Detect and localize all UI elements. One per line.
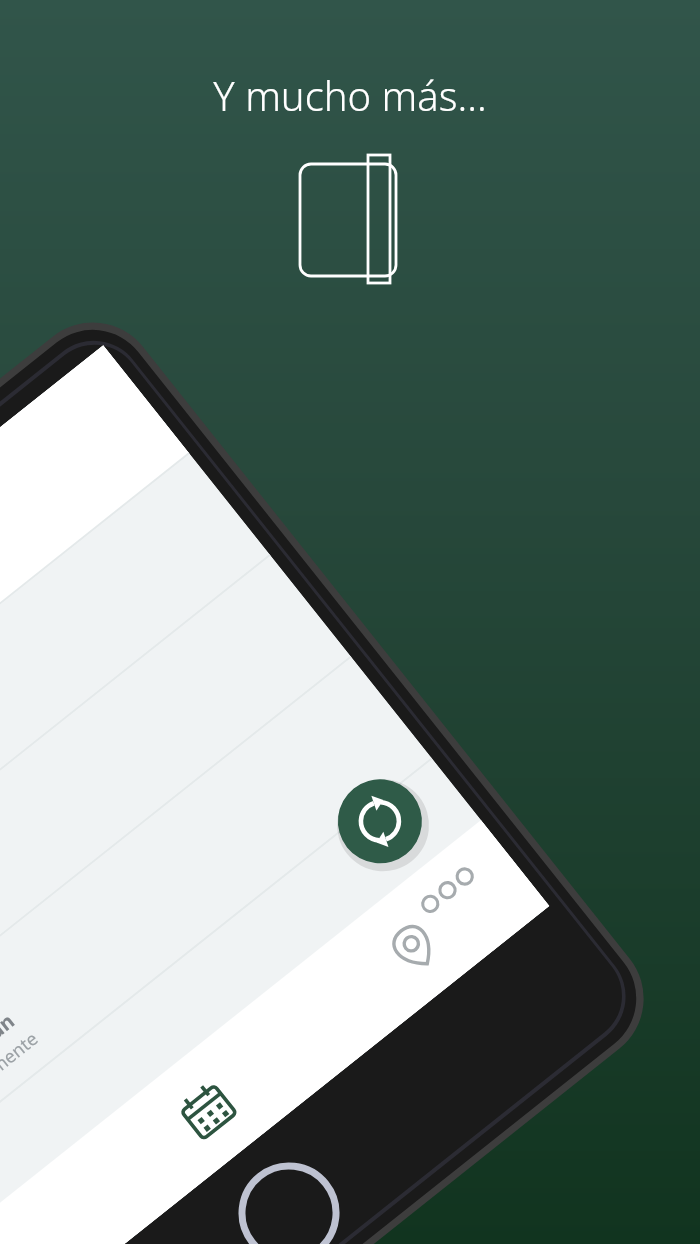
button[interactable]: Notebook [292,152,406,288]
staticText: No hay nada agendado aún [0,1007,20,1199]
button[interactable]: No hay nada agendado aún [0,1002,26,1199]
staticText: No tienes eventos proximamente [0,1026,43,1220]
staticText: Y mucho más... [213,68,487,122]
